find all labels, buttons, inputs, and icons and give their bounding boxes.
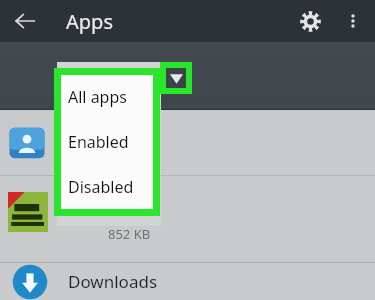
staticText: Enabled [68,131,129,153]
button[interactable] [0,110,375,175]
button[interactable]: o.me [0,176,375,262]
button[interactable]: Enabled [61,119,153,164]
button[interactable]: Downloads [0,263,375,300]
button[interactable]: Settings [293,4,327,38]
button[interactable]: Disabled [61,164,153,209]
button[interactable]: Back [8,4,42,38]
staticText: 852 KB [108,225,151,243]
button[interactable]: All apps [61,75,153,119]
button[interactable]: Filter apps [160,62,192,94]
button[interactable]: All apps [61,75,153,209]
staticText: Downloads [68,270,158,293]
staticText: o.me [108,198,142,217]
button[interactable]: More options [337,5,369,37]
staticText: Apps [66,8,113,35]
staticText: All apps [68,86,127,108]
staticText: Disabled [68,176,134,198]
